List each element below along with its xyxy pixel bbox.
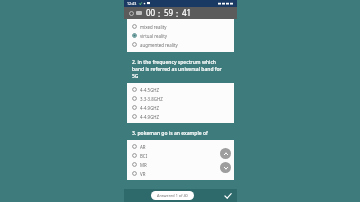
staticText: Answered 1 of 40 — [157, 193, 188, 198]
staticText: 4-4.9GHZ — [140, 105, 160, 111]
staticText: 3. pokeman go is an example of — [132, 130, 208, 137]
staticText: 4-4.5GHZ — [140, 87, 160, 93]
staticText: : — [174, 8, 181, 19]
staticText: AR — [140, 144, 146, 150]
button[interactable]: Answered 1 of 40 — [151, 191, 194, 200]
button[interactable]: Previous question — [220, 148, 231, 159]
button[interactable]: BCI — [127, 151, 234, 160]
staticText: MR — [140, 162, 147, 168]
button[interactable]: 3.3-3.8GHZ — [127, 94, 234, 103]
staticText: virtual reality — [140, 33, 167, 39]
button[interactable]: virtual reality — [127, 31, 234, 40]
button[interactable]: AR — [127, 142, 234, 151]
staticText: mixed reality — [140, 24, 167, 30]
staticText: VR — [140, 171, 146, 177]
staticText: 00 — [146, 7, 156, 18]
button[interactable]: 4-4.9GHZ — [127, 112, 234, 121]
staticText: 41 — [182, 7, 192, 18]
staticText: : — [156, 8, 163, 19]
button[interactable]: Next question — [220, 162, 231, 173]
staticText: 3.3-3.8GHZ — [140, 96, 163, 102]
button[interactable]: augmented reality — [127, 40, 234, 49]
button[interactable]: MR — [127, 160, 234, 169]
staticText: 59 — [164, 7, 174, 18]
staticText: augmented reality — [140, 42, 178, 48]
button[interactable]: Submit test — [222, 190, 233, 201]
staticText: 4-4.9GHZ — [140, 114, 160, 120]
staticText: 2. in the frequency spectrum which band … — [132, 59, 229, 80]
button[interactable]: 4-4.5GHZ — [127, 85, 234, 94]
staticText: BCI — [140, 153, 148, 159]
button[interactable]: VR — [127, 169, 234, 178]
button[interactable]: 4-4.9GHZ — [127, 103, 234, 112]
staticText: 12:43 — [127, 1, 137, 6]
button[interactable]: mixed reality — [127, 22, 234, 31]
